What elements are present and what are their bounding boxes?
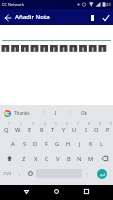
button[interactable]: 5 [47,121,58,136]
staticText: K [89,140,93,148]
staticText: D [33,140,38,148]
staticText: Q [4,126,9,134]
button[interactable]: J [74,136,85,151]
button[interactable]: Thanks [11,105,33,120]
button[interactable]: K [85,136,96,151]
staticText: R [40,126,44,134]
staticText: J [79,140,81,148]
button[interactable]: 2 [12,121,24,136]
button[interactable]: Shift [0,151,18,166]
staticText: F [45,140,49,148]
button[interactable]: Emoji [25,167,35,179]
staticText: U [72,126,77,134]
button[interactable]: Google [1,107,14,120]
staticText: T [51,126,55,134]
staticText: P [106,126,110,134]
button[interactable]: V [52,151,63,166]
staticText: B [67,155,71,163]
staticText: Ok [81,110,88,116]
staticText: L [100,140,104,148]
button[interactable]: L [96,136,107,151]
staticText: C [45,155,49,163]
staticText: I [85,126,87,134]
button[interactable]: 8 [80,121,91,136]
button[interactable]: Delete note [86,11,99,24]
button[interactable]: X [30,151,41,166]
button[interactable]: H [63,136,74,151]
staticText: Z [22,155,26,163]
staticText: E [28,126,32,134]
staticText: , [19,170,21,177]
staticText: Añadir Nota [15,13,50,21]
button[interactable]: Backspace [96,151,113,166]
staticText: 3 [32,122,34,126]
staticText: V [56,155,60,163]
staticText: . [87,170,89,177]
staticText: CC Network [2,2,25,7]
staticText: Thanks [14,110,30,116]
button[interactable]: Comma [15,167,25,179]
button[interactable]: Save note [99,11,112,24]
button[interactable]: M [85,151,96,166]
staticText: 9 [99,122,101,126]
staticText: 4 [44,122,46,126]
staticText: A [11,140,15,148]
button[interactable]: Ok [73,105,95,120]
staticText: ?123 [3,171,12,176]
button[interactable]: Z [18,151,30,166]
staticText: 8 [88,122,90,126]
button[interactable]: I [45,105,67,120]
staticText: O [94,126,99,134]
staticText: 1 [8,122,10,126]
button[interactable]: A [7,136,19,151]
staticText: H [66,140,71,148]
button[interactable]: 3 [24,121,36,136]
staticText: 6 [66,122,68,126]
button[interactable]: Home [50,185,63,198]
button[interactable]: Back [0,10,15,25]
staticText: 3:21 [103,2,111,7]
staticText: N [77,155,82,163]
button[interactable]: Back [20,185,33,198]
staticText: M [88,155,94,163]
button[interactable]: C [41,151,52,166]
button[interactable]: 6 [58,121,69,136]
button[interactable]: 9 [91,121,102,136]
button[interactable]: 4 [36,121,47,136]
staticText: X [34,155,38,163]
button[interactable]: 0 [102,121,113,136]
button[interactable]: 1 [0,121,12,136]
staticText: W [15,126,21,134]
button[interactable]: Period [83,167,93,179]
staticText: G [55,140,60,148]
button[interactable]: N [74,151,85,166]
button[interactable]: D [30,136,41,151]
button[interactable]: F [41,136,52,151]
staticText: 2 [20,122,22,126]
staticText: S [23,140,27,148]
button[interactable]: 7 [69,121,80,136]
button[interactable]: G [52,136,63,151]
staticText: 0 [110,122,112,126]
staticText: 7 [77,122,79,126]
staticText: 5 [55,122,57,126]
staticText: I [55,110,57,116]
staticText: Y [62,126,66,134]
button[interactable]: ?123 [0,167,14,179]
button[interactable]: B [63,151,74,166]
button[interactable]: Enter [97,169,107,179]
button[interactable]: S [19,136,30,151]
button[interactable]: Recent apps [80,185,93,198]
